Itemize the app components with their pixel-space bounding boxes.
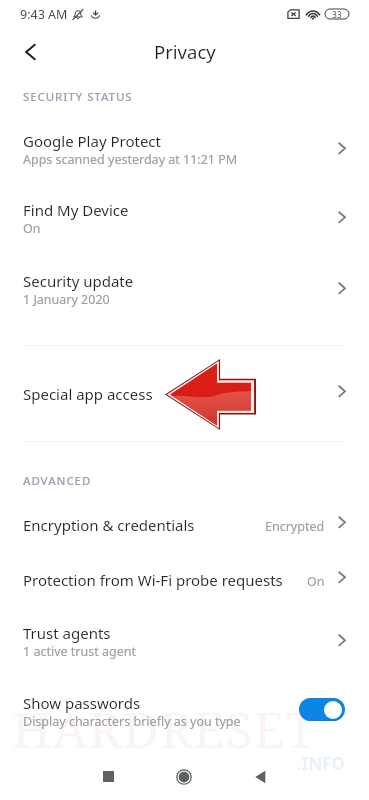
button[interactable]: Show passwords <box>0 692 369 748</box>
button[interactable]: Back <box>13 34 49 70</box>
button[interactable]: Special app access <box>0 383 369 427</box>
button[interactable]: Security update <box>0 270 369 326</box>
staticText: 1 January 2020 <box>23 291 110 308</box>
button[interactable]: Find My Device <box>0 199 369 255</box>
staticText: Apps scanned yesterday at 11:21 PM <box>23 151 238 168</box>
staticText: Display characters briefly as you type <box>23 713 241 730</box>
staticText: 1 active trust agent <box>23 643 136 660</box>
staticText: Security update <box>23 271 134 291</box>
staticText: Privacy <box>154 39 216 64</box>
button[interactable]: Back <box>240 757 280 797</box>
staticText: HARDRESET <box>12 695 318 763</box>
staticText: Protection from Wi-Fi probe requests <box>23 570 283 590</box>
staticText: Trust agents <box>23 623 111 643</box>
staticText: .INFO <box>297 752 345 775</box>
staticText: 33 <box>332 9 342 19</box>
staticText: Special app access <box>23 384 153 404</box>
staticText: SECURITY STATUS <box>23 89 133 105</box>
button[interactable]: Recent apps <box>88 756 128 796</box>
staticText: Encryption & credentials <box>23 515 195 535</box>
button[interactable]: Google Play Protect <box>0 130 369 186</box>
button[interactable]: Home <box>164 757 204 797</box>
staticText: 9:43 AM <box>20 6 68 23</box>
staticText: Show passwords <box>23 693 141 713</box>
button[interactable]: Trust agents <box>0 622 369 678</box>
staticText: ADVANCED <box>23 473 92 489</box>
button[interactable]: Encryption & credentials <box>0 514 369 558</box>
staticText: On <box>307 573 325 590</box>
button[interactable]: Protection from Wi-Fi probe requests <box>0 569 369 613</box>
staticText: Google Play Protect <box>23 131 161 151</box>
staticText: Encrypted <box>265 518 325 535</box>
staticText: Find My Device <box>23 200 129 220</box>
button[interactable]: Show passwords toggle <box>299 698 345 721</box>
staticText: On <box>23 220 41 237</box>
